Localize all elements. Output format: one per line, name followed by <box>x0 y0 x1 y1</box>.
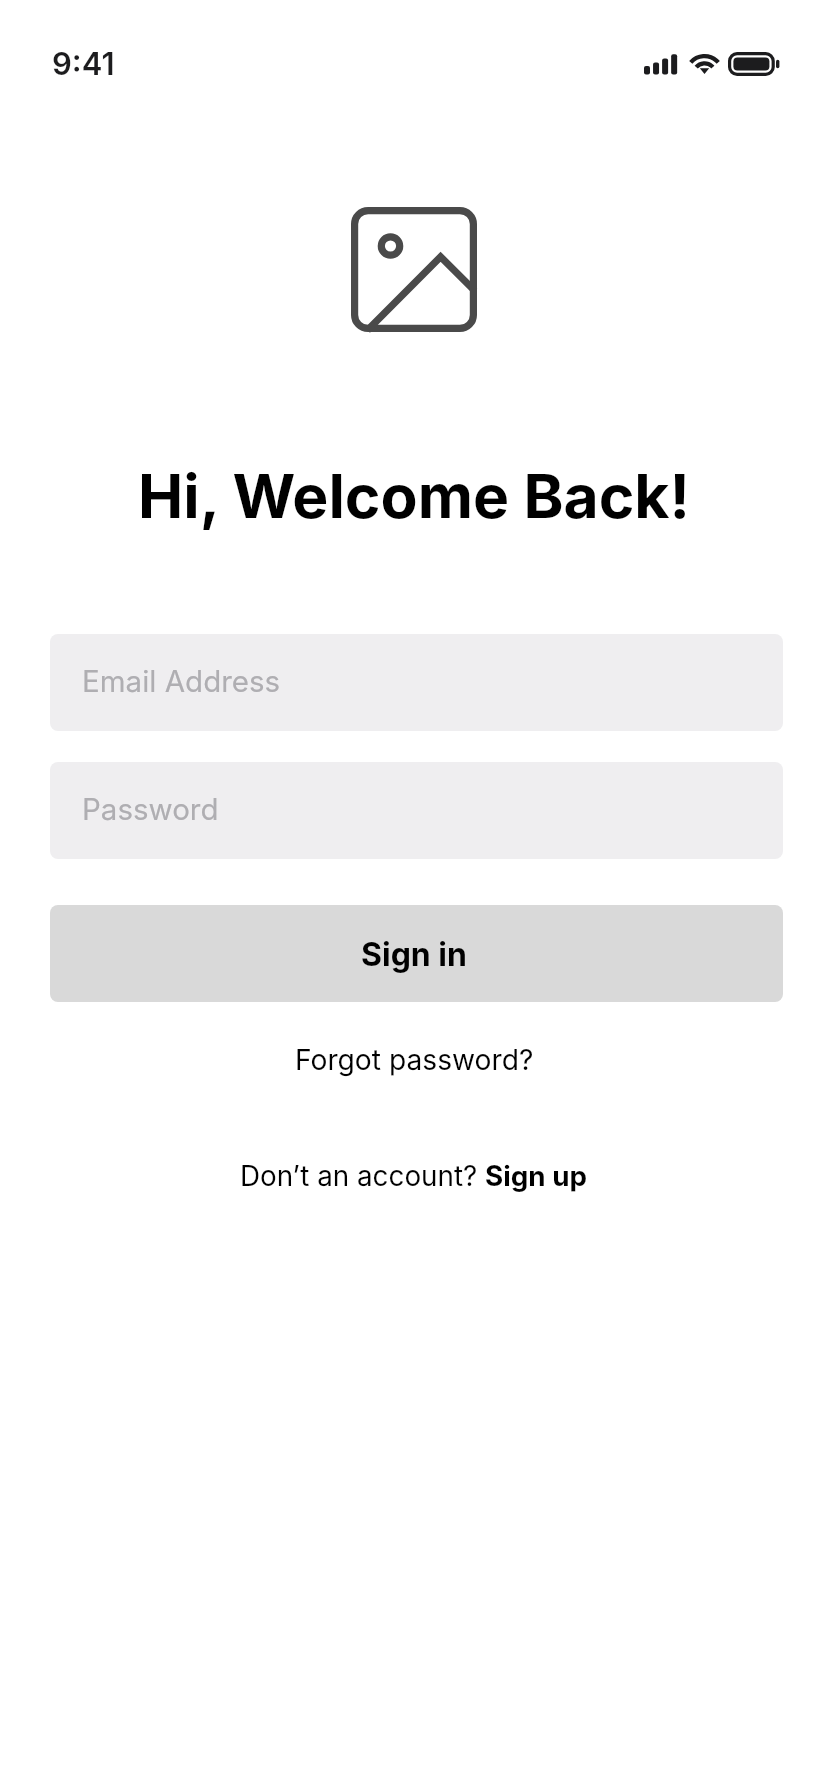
other: Battery full <box>728 52 780 76</box>
staticText: Email Address <box>82 663 281 699</box>
other: App logo <box>351 207 477 332</box>
staticText: Password <box>82 791 219 827</box>
button[interactable]: Forgot password? <box>275 1033 554 1087</box>
button[interactable]: Sign in <box>50 905 783 1002</box>
button[interactable]: Email Address <box>50 634 783 731</box>
staticText: Forgot password? <box>295 1043 534 1077</box>
button[interactable]: Password <box>50 762 783 859</box>
staticText: Sign in <box>361 935 467 974</box>
other: Cellular signal strength <box>644 54 678 75</box>
other: Wi-Fi connected <box>689 53 720 75</box>
staticText: Hi, Welcome Back! <box>0 459 828 532</box>
staticText: 9:41 <box>52 45 115 83</box>
staticText: Don’t an account? Sign up <box>240 1159 588 1193</box>
button[interactable]: Don’t an account? Sign up <box>220 1149 608 1203</box>
